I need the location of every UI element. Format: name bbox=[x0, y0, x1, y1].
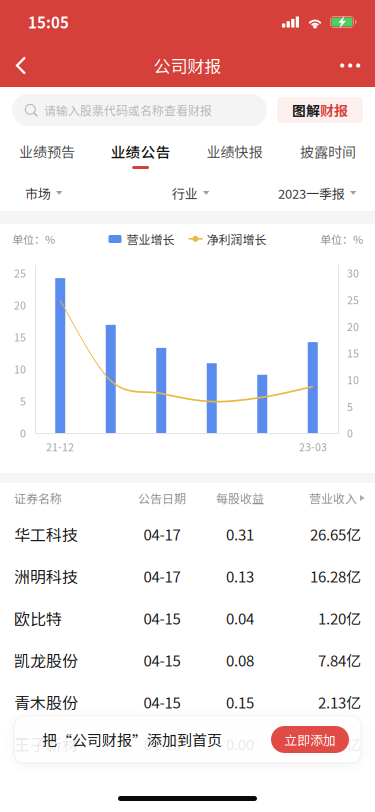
staticText: 04-17 bbox=[143, 565, 180, 587]
staticText: 0.00 bbox=[226, 733, 254, 755]
button[interactable]: 立即添加 bbox=[271, 726, 349, 753]
staticText: 2023一季报 bbox=[278, 184, 345, 202]
staticText: 单位：% bbox=[320, 231, 363, 247]
staticText: 10 bbox=[347, 372, 359, 387]
staticText: 披露时间 bbox=[300, 141, 356, 162]
staticText: 21-12 bbox=[46, 439, 74, 454]
staticText: 0 bbox=[347, 425, 353, 441]
staticText: 财报 bbox=[320, 100, 348, 120]
staticText: 25 bbox=[347, 292, 359, 307]
staticText: 04-15 bbox=[143, 607, 180, 629]
button[interactable]: 欧比特 bbox=[0, 597, 375, 639]
button[interactable]: 返回 bbox=[0, 44, 43, 87]
staticText: 1.20亿 bbox=[318, 607, 361, 629]
staticText: 请输入股票代码或名称查看财报 bbox=[44, 101, 212, 119]
button[interactable]: 2023一季报 bbox=[246, 176, 357, 210]
staticText: 公司财报 bbox=[153, 53, 221, 78]
button[interactable]: 披露时间 bbox=[281, 133, 375, 175]
staticText: 图解 bbox=[292, 100, 320, 120]
staticText: 04-17 bbox=[143, 523, 180, 545]
staticText: 王子新材 bbox=[14, 732, 78, 756]
staticText: 0.08 bbox=[226, 649, 254, 671]
button[interactable]: 业绩公告 bbox=[94, 133, 188, 175]
staticText: 25 bbox=[14, 265, 26, 281]
staticText: 04-15 bbox=[143, 649, 180, 671]
staticText: 04-15 bbox=[143, 691, 180, 713]
staticText: 5 bbox=[347, 399, 353, 414]
staticText: 0.31 bbox=[226, 523, 254, 545]
button[interactable]: 更多 bbox=[324, 44, 375, 87]
staticText: 公告日期 bbox=[138, 489, 186, 507]
staticText: 业绩快报 bbox=[206, 141, 262, 162]
staticText: 洲明科技 bbox=[14, 564, 78, 588]
staticText: 营业增长 bbox=[126, 230, 174, 248]
staticText: 凯龙股份 bbox=[14, 648, 78, 672]
button[interactable]: 华工科技 bbox=[0, 513, 375, 555]
button[interactable]: 凯龙股份 bbox=[0, 639, 375, 681]
staticText: 26.65亿 bbox=[310, 523, 361, 545]
staticText: 0.04 bbox=[226, 607, 254, 629]
staticText: 行业 bbox=[172, 184, 198, 202]
button[interactable]: 图解 bbox=[277, 97, 363, 123]
staticText: 净利润增长 bbox=[206, 230, 266, 248]
staticText: 23-03 bbox=[299, 439, 327, 454]
staticText: 20 bbox=[347, 319, 359, 334]
button[interactable]: 市场 bbox=[25, 176, 136, 210]
staticText: 每股收益 bbox=[216, 489, 264, 507]
button[interactable]: 王子新材 bbox=[0, 723, 375, 765]
staticText: 5 bbox=[20, 393, 26, 409]
staticText: 15 bbox=[347, 345, 359, 361]
button[interactable]: 行业 bbox=[136, 176, 246, 210]
button[interactable]: 青木股份 bbox=[0, 681, 375, 723]
button[interactable]: 洲明科技 bbox=[0, 555, 375, 597]
staticText: 立即添加 bbox=[284, 730, 336, 749]
staticText: 华工科技 bbox=[14, 522, 78, 546]
staticText: 业绩公告 bbox=[111, 141, 171, 162]
staticText: 欧比特 bbox=[14, 606, 62, 630]
staticText: 把“公司财报”添加到首页 bbox=[42, 729, 222, 750]
staticText: 0 bbox=[20, 425, 26, 441]
button[interactable]: 业绩预告 bbox=[0, 133, 94, 175]
staticText: 0.15 bbox=[226, 691, 254, 713]
staticText: 10 bbox=[14, 361, 26, 377]
staticText: 16.28亿 bbox=[310, 565, 361, 587]
staticText: 1.48亿 bbox=[318, 733, 361, 755]
staticText: 业绩预告 bbox=[19, 141, 75, 162]
staticText: 7.84亿 bbox=[318, 649, 361, 671]
staticText: 证券名称 bbox=[14, 489, 62, 507]
staticText: 15 bbox=[14, 329, 26, 345]
staticText: 30 bbox=[347, 265, 359, 281]
staticText: 0.13 bbox=[226, 565, 254, 587]
staticText: 单位：% bbox=[12, 231, 55, 247]
staticText: 市场 bbox=[25, 184, 51, 202]
button[interactable]: 业绩快报 bbox=[187, 133, 281, 175]
staticText: 20 bbox=[14, 297, 26, 313]
staticText: 青木股份 bbox=[14, 690, 78, 714]
staticText: 04-15 bbox=[143, 733, 180, 755]
staticText: 15:05 bbox=[28, 11, 69, 33]
staticText: 2.13亿 bbox=[318, 691, 361, 713]
staticText: 营业收入 bbox=[309, 489, 357, 507]
button[interactable]: 请输入股票代码或名称查看财报 bbox=[12, 94, 267, 126]
